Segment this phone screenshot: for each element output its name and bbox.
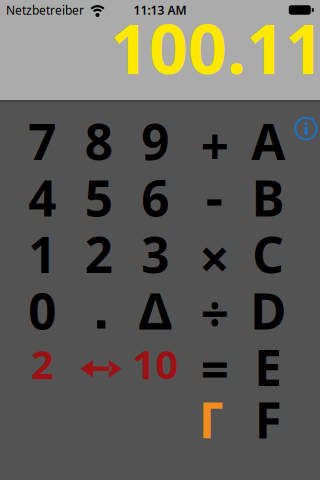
button[interactable]: 4: [14, 169, 70, 225]
staticText: 11:13 AM: [133, 2, 186, 18]
button[interactable]: ÷: [186, 284, 243, 340]
button[interactable]: 0: [14, 282, 70, 338]
staticText: 7: [28, 108, 56, 173]
staticText: 6: [141, 164, 169, 230]
button[interactable]: 5: [70, 169, 127, 225]
button[interactable]: +: [186, 117, 243, 174]
button[interactable]: Γ: [183, 391, 240, 447]
staticText: 4: [28, 164, 56, 230]
button[interactable]: 9: [127, 112, 183, 169]
button[interactable]: 7: [14, 112, 70, 169]
staticText: D: [250, 277, 286, 343]
staticText: 2: [31, 337, 54, 390]
staticText: B: [252, 164, 285, 230]
button[interactable]: Δ: [127, 282, 183, 338]
button[interactable]: 8: [70, 112, 127, 169]
staticText: Δ: [139, 277, 172, 343]
button[interactable]: Info: [292, 115, 319, 142]
staticText: Netzbetreiber: [6, 2, 84, 18]
staticText: 9: [141, 108, 169, 173]
button[interactable]: 2: [70, 225, 127, 282]
button[interactable]: E: [240, 338, 296, 395]
button[interactable]: Minus: [183, 169, 240, 225]
staticText: 10: [132, 337, 178, 390]
staticText: A: [251, 108, 285, 173]
staticText: 3: [141, 221, 169, 286]
staticText: E: [254, 334, 282, 399]
button[interactable]: C: [240, 225, 296, 282]
button[interactable]: 3: [127, 225, 183, 282]
button[interactable]: =: [186, 340, 243, 396]
staticText: 5: [85, 164, 113, 230]
staticText: F: [255, 386, 282, 452]
staticText: 1: [28, 221, 56, 286]
button[interactable]: A: [240, 112, 296, 169]
button[interactable]: ×: [186, 229, 243, 286]
staticText: 100.11: [110, 2, 320, 93]
staticText: 0: [28, 277, 56, 343]
staticText: =: [201, 335, 229, 401]
staticText: ×: [199, 222, 230, 293]
button[interactable]: B: [240, 169, 296, 225]
button[interactable]: Switch base 2 and 10: [14, 338, 183, 395]
staticText: 2: [85, 221, 113, 286]
button[interactable]: 6: [127, 169, 183, 225]
staticText: C: [252, 221, 284, 286]
button[interactable]: F: [240, 391, 296, 447]
staticText: +: [201, 113, 229, 178]
staticText: ÷: [201, 279, 229, 345]
button[interactable]: Decimal point: [70, 282, 127, 338]
staticText: Γ: [199, 386, 225, 452]
staticText: 8: [85, 108, 113, 173]
button[interactable]: 1: [14, 225, 70, 282]
button[interactable]: D: [240, 282, 296, 338]
